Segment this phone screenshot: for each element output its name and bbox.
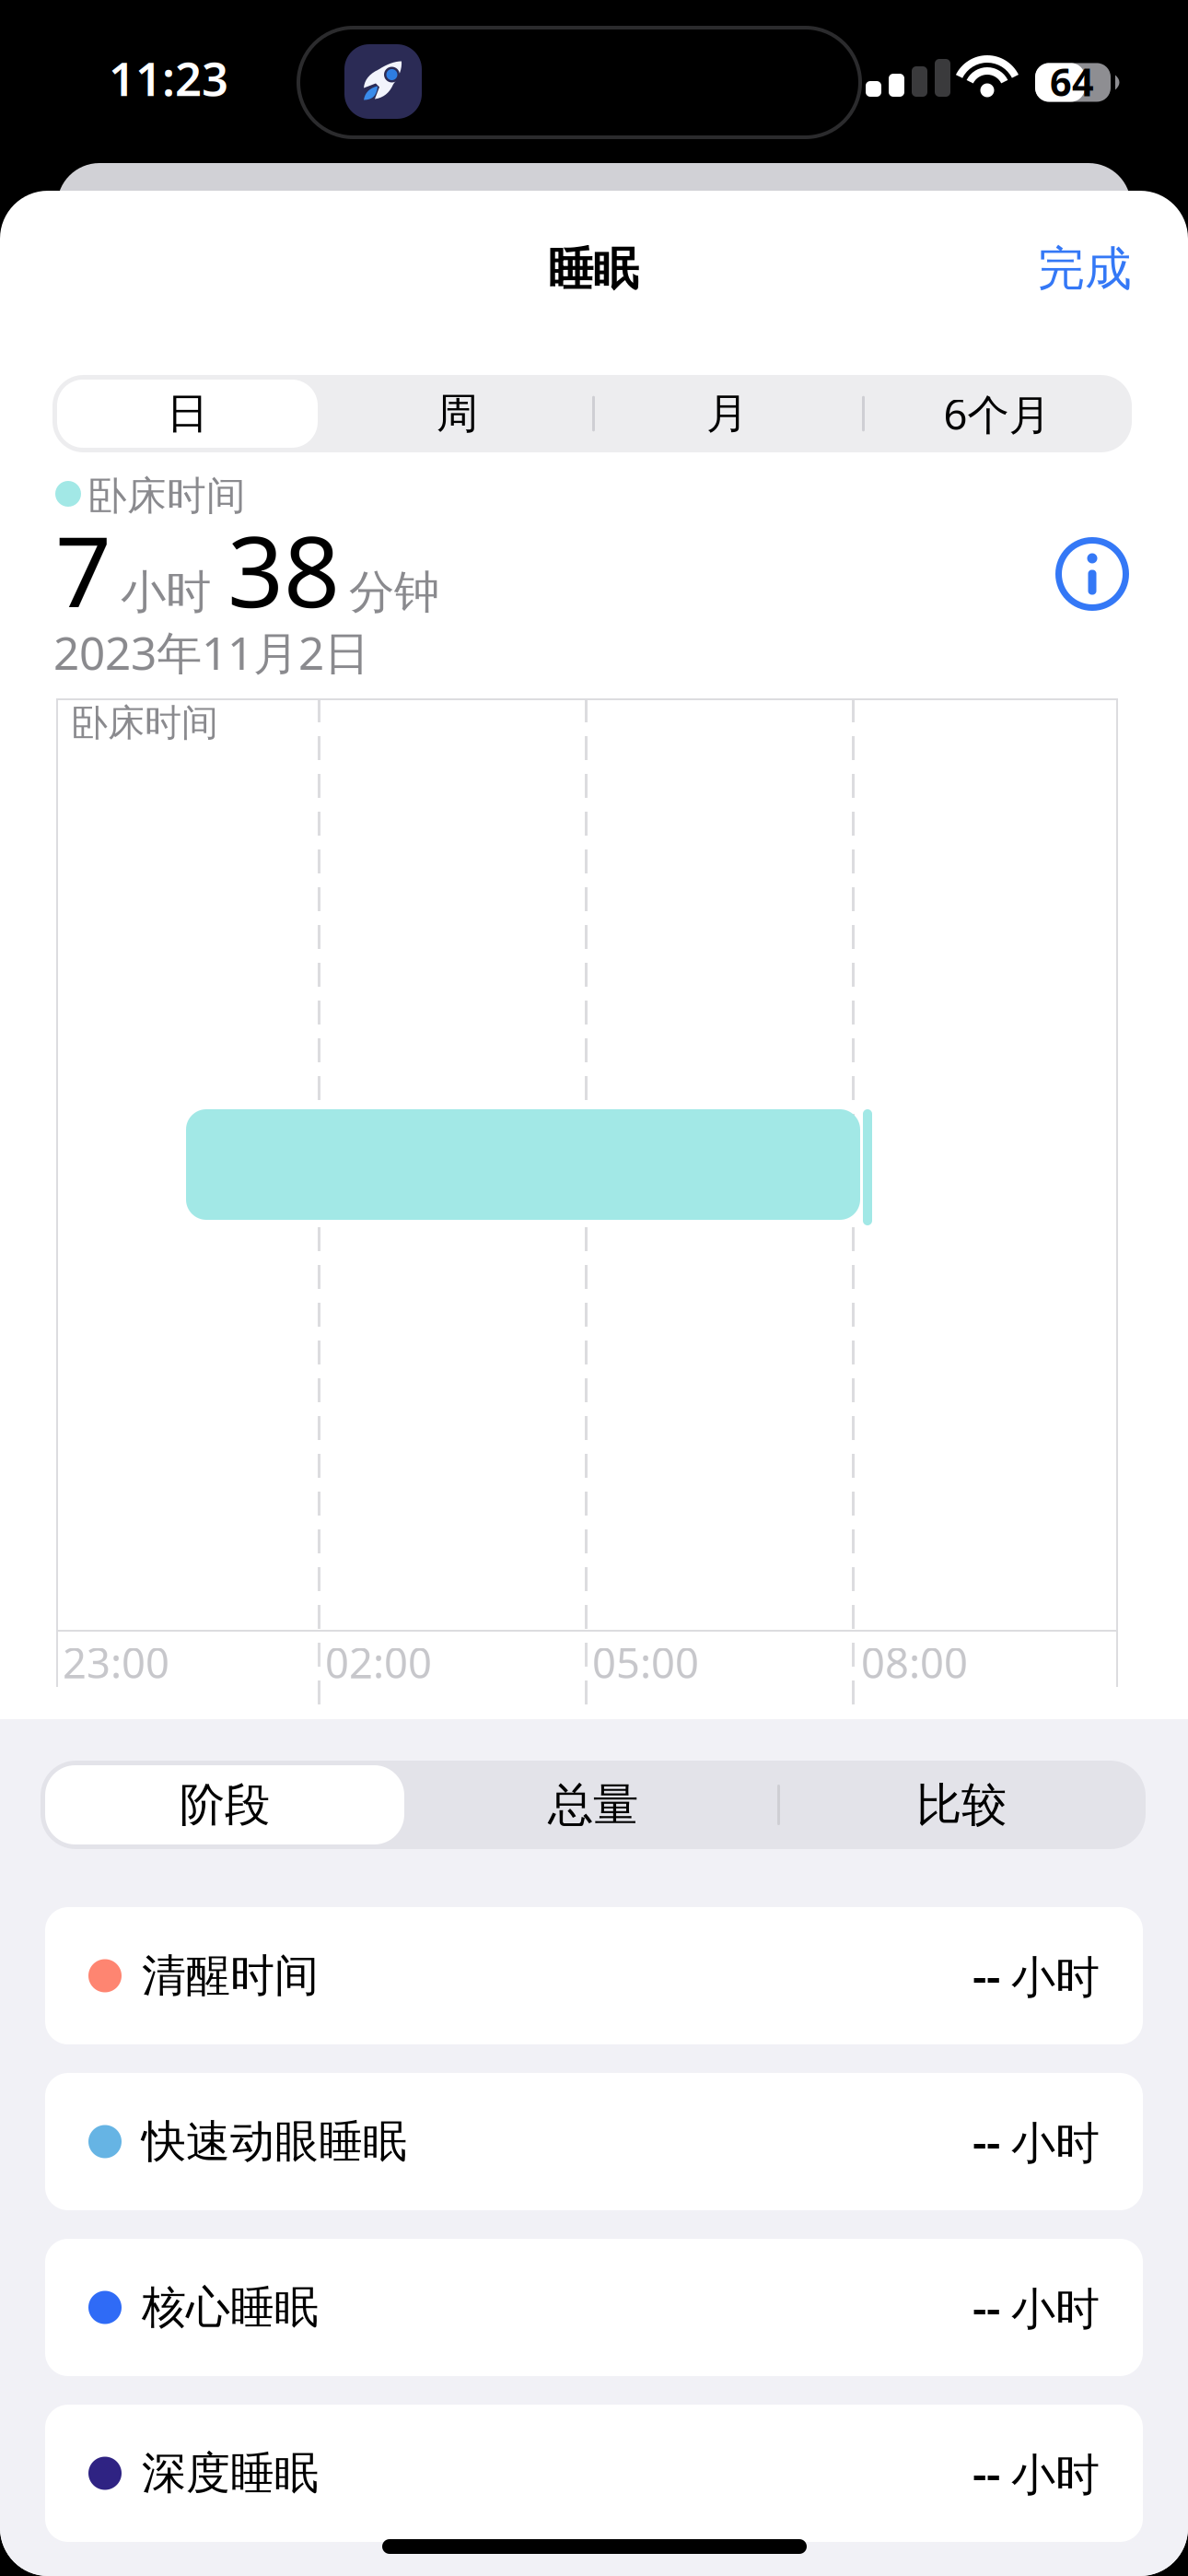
staticText: 完成	[1038, 240, 1132, 298]
staticText: 卧床时间	[87, 472, 246, 520]
staticText: 核心睡眠	[142, 2280, 319, 2335]
staticText: 38	[227, 504, 340, 634]
staticText: 总量	[548, 1777, 638, 1833]
staticText: 清醒时间	[142, 1949, 319, 2003]
staticText: 7	[55, 504, 111, 634]
staticText: 比较	[916, 1777, 1007, 1833]
staticText: 月	[706, 388, 748, 439]
staticText: 64	[1050, 56, 1094, 107]
staticText: 6个月	[943, 386, 1050, 441]
staticText: 02:00	[325, 1634, 432, 1690]
staticText: -- 小时	[973, 2278, 1100, 2337]
button[interactable]: 深度睡眠	[45, 2405, 1143, 2542]
button[interactable]: 清醒时间	[45, 1907, 1143, 2044]
button[interactable]: 快速动眼睡眠	[45, 2073, 1143, 2210]
staticText: 23:00	[63, 1634, 169, 1690]
staticText: 快速动眼睡眠	[142, 2114, 407, 2169]
staticText: 11:23	[109, 47, 228, 109]
staticText: 深度睡眠	[142, 2446, 319, 2500]
button[interactable]: 日	[52, 375, 322, 452]
button[interactable]: 阶段	[41, 1761, 409, 1849]
staticText: -- 小时	[973, 2444, 1100, 2503]
button[interactable]: 完成	[980, 227, 1132, 311]
staticText: 分钟	[349, 564, 439, 620]
staticText: -- 小时	[973, 1946, 1100, 2005]
button[interactable]: 总量	[409, 1761, 777, 1849]
button[interactable]: 周	[322, 375, 592, 452]
button[interactable]: 核心睡眠	[45, 2239, 1143, 2376]
button[interactable]: 月	[592, 375, 862, 452]
staticText: 周	[437, 388, 478, 439]
staticText: 睡眠	[548, 241, 638, 297]
staticText: 05:00	[592, 1634, 699, 1690]
button[interactable]: About this data	[1058, 540, 1126, 608]
staticText: -- 小时	[973, 2112, 1100, 2171]
staticText: 日	[167, 388, 208, 439]
staticText: 08:00	[861, 1634, 968, 1690]
staticText: 2023年11月2日	[53, 622, 369, 682]
staticText: 阶段	[180, 1777, 270, 1833]
staticText: 卧床时间	[71, 700, 218, 745]
button[interactable]: 6个月	[862, 375, 1132, 452]
button[interactable]: 比较	[777, 1761, 1146, 1849]
staticText: 小时	[121, 564, 211, 620]
